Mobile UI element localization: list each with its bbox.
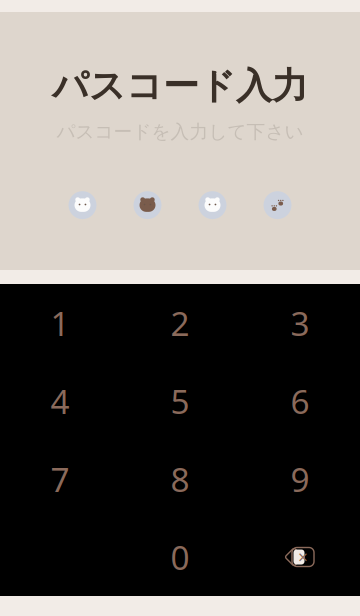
- staticText: 8: [170, 457, 189, 501]
- staticText: 0: [170, 535, 189, 579]
- button[interactable]: 4: [0, 362, 120, 440]
- button[interactable]: 6: [240, 362, 360, 440]
- staticText: 3: [290, 301, 309, 345]
- staticText: パスコードを入力して下さい: [56, 120, 303, 143]
- staticText: 6: [290, 379, 309, 423]
- button[interactable]: 9: [240, 440, 360, 518]
- button[interactable]: 0: [120, 518, 240, 596]
- button[interactable]: 3: [240, 284, 360, 362]
- staticText: 1: [50, 301, 69, 345]
- button[interactable]: 2: [120, 284, 240, 362]
- staticText: 5: [170, 379, 189, 423]
- staticText: ×: [298, 545, 308, 568]
- button[interactable]: 5: [120, 362, 240, 440]
- button[interactable]: 8: [120, 440, 240, 518]
- button[interactable]: 1: [0, 284, 120, 362]
- staticText: パスコード入力: [52, 64, 308, 108]
- staticText: 2: [170, 301, 189, 345]
- staticText: 4: [50, 379, 69, 423]
- button[interactable]: 7: [0, 440, 120, 518]
- staticText: 7: [50, 457, 69, 501]
- button[interactable]: Delete: [240, 518, 360, 596]
- staticText: 9: [290, 457, 309, 501]
